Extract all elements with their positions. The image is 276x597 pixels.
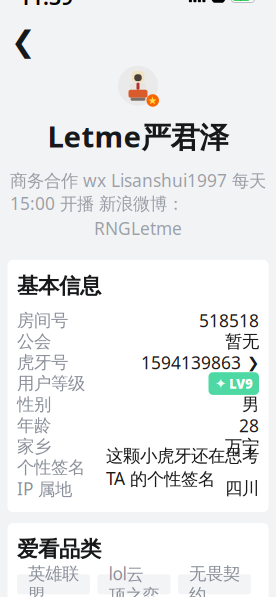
staticText: 基本信息 <box>17 273 101 299</box>
staticText: ✦ <box>214 375 226 392</box>
staticText: 暂无 <box>225 331 259 352</box>
staticText: 四川 <box>225 478 259 499</box>
staticText: RNGLetme <box>94 217 182 240</box>
staticText: 万宁 <box>225 436 259 457</box>
button[interactable]: 英雄联盟 <box>17 574 90 594</box>
staticText: LV9 <box>229 375 253 392</box>
staticText: ❯ <box>247 354 259 371</box>
staticText: 518518 <box>199 309 259 332</box>
staticText: 11:39 <box>19 0 73 11</box>
staticText: 1594139863 <box>141 351 241 374</box>
button[interactable]: 虎牙号 <box>17 352 259 373</box>
staticText: 年龄 <box>17 415 51 436</box>
staticText: 英雄联盟 <box>28 563 79 597</box>
staticText: 商务合作 wx Lisanshui1997 每天 15:00 开播 新浪微博： <box>10 169 266 215</box>
staticText: 28 <box>239 414 259 437</box>
staticText: 虎牙号 <box>17 352 68 373</box>
staticText: 这颗小虎牙还在思考 TA 的个性签名 <box>106 445 259 490</box>
staticText: ⚡︎ <box>239 0 247 3</box>
staticText: 家乡 <box>17 436 51 457</box>
staticText: 公会 <box>17 331 51 352</box>
button[interactable]: lol云顶之弈 <box>97 574 170 594</box>
staticText: 个性签名 <box>17 457 85 478</box>
staticText: lol云顶之弈 <box>108 562 159 597</box>
staticText: IP 属地 <box>17 477 72 500</box>
staticText: ❮ <box>11 25 36 58</box>
staticText: 男 <box>242 394 259 415</box>
button[interactable]: 无畏契约 <box>178 574 251 594</box>
staticText: 无畏契约 <box>189 563 240 597</box>
staticText: Letme严君泽 <box>47 117 228 156</box>
staticText: 用户等级 <box>17 373 85 394</box>
staticText: 房间号 <box>17 310 68 331</box>
button[interactable]: Back <box>0 20 55 64</box>
staticText: ★ <box>148 94 158 106</box>
staticText: 性别 <box>17 394 51 415</box>
staticText: 爱看品类 <box>17 536 101 562</box>
